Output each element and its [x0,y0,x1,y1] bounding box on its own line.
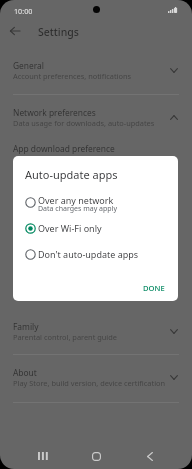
staticText: Over Wi-Fi only [38,222,102,234]
button[interactable]: General [0,55,192,91]
staticText: Don't auto-update apps [38,248,139,260]
staticText: 10:00 [14,6,33,16]
staticText: DONE [143,283,165,293]
staticText: General [13,60,44,71]
button[interactable]: Network preferences [0,102,192,138]
button[interactable]: Home [81,441,111,469]
staticText: Play Store, build version, device certif… [13,378,166,388]
staticText: About [13,367,37,378]
staticText: Account preferences, notifications [13,71,132,81]
button[interactable]: Over Wi-Fi only [13,215,178,241]
staticText: Data usage for downloads, auto-updates [13,118,155,128]
button[interactable]: Over any network [13,189,178,215]
button[interactable]: Back [135,441,165,469]
button[interactable]: About [0,362,192,398]
staticText: App download preference [13,143,115,154]
button[interactable]: App download preference [0,138,192,162]
button[interactable]: Don't auto-update apps [13,241,178,267]
staticText: Settings [38,25,79,39]
button[interactable]: Family [0,316,192,352]
button[interactable]: DONE [135,278,173,298]
staticText: Parental control, parent guide [13,332,117,342]
staticText: Data charges may apply [38,204,117,214]
staticText: Network preferences [13,107,96,118]
staticText: Family [13,321,39,332]
staticText: Auto-update apps [25,167,118,182]
button[interactable]: Recent apps [28,441,58,469]
button[interactable]: Back [4,20,26,42]
staticText: Over any network [38,194,114,206]
